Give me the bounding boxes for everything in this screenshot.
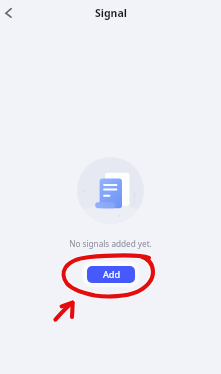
staticText: Add bbox=[103, 268, 121, 281]
button[interactable]: Back bbox=[0, 1, 20, 25]
staticText: No signals added yet. bbox=[69, 238, 152, 249]
staticText: Signal bbox=[95, 6, 127, 20]
button[interactable]: Add bbox=[87, 266, 135, 283]
